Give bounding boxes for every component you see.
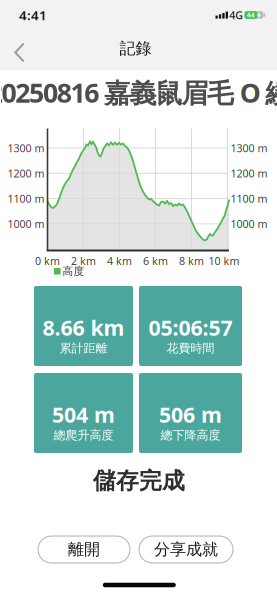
staticText: 0 km (35, 254, 60, 268)
staticText: 1300 m (230, 141, 267, 155)
staticText: 累計距離 (59, 341, 107, 356)
staticText: 10 km (208, 254, 239, 268)
staticText: 8.66 km (42, 313, 124, 342)
staticText: 1200 m (230, 166, 267, 180)
staticText: 4G (229, 8, 243, 22)
staticText: 記錄 (119, 39, 151, 58)
staticText: 1100 m (230, 191, 267, 206)
staticText: 分享成就 (154, 540, 218, 559)
staticText: 8 km (179, 254, 204, 268)
staticText: 4:41 (19, 6, 47, 24)
button[interactable] (9, 40, 29, 64)
staticText: 花費時間 (166, 341, 214, 356)
staticText: 1100 m (7, 191, 44, 206)
staticText: 總爬升高度 (53, 428, 113, 443)
staticText: 儲存完成 (93, 467, 185, 495)
staticText: 504 m (52, 400, 115, 429)
staticText: 高度 (62, 265, 84, 278)
staticText: 1200 m (7, 166, 44, 180)
staticText: 44 (247, 11, 255, 19)
staticText: 離開 (68, 540, 100, 559)
staticText: 2 km (71, 254, 96, 268)
staticText: 1300 m (7, 141, 44, 155)
staticText: 1000 m (7, 217, 44, 231)
staticText: 05:06:57 (148, 313, 232, 342)
button[interactable]: 分享成就 (139, 536, 233, 563)
staticText: 20250816 嘉義鼠眉毛 O 繞 (0, 75, 277, 110)
staticText: 506 m (159, 400, 222, 429)
button[interactable]: 離開 (38, 536, 130, 563)
staticText: 6 km (143, 254, 168, 268)
staticText: 1000 m (230, 217, 267, 231)
staticText: 總下降高度 (160, 428, 220, 443)
staticText: 4 km (107, 254, 132, 268)
